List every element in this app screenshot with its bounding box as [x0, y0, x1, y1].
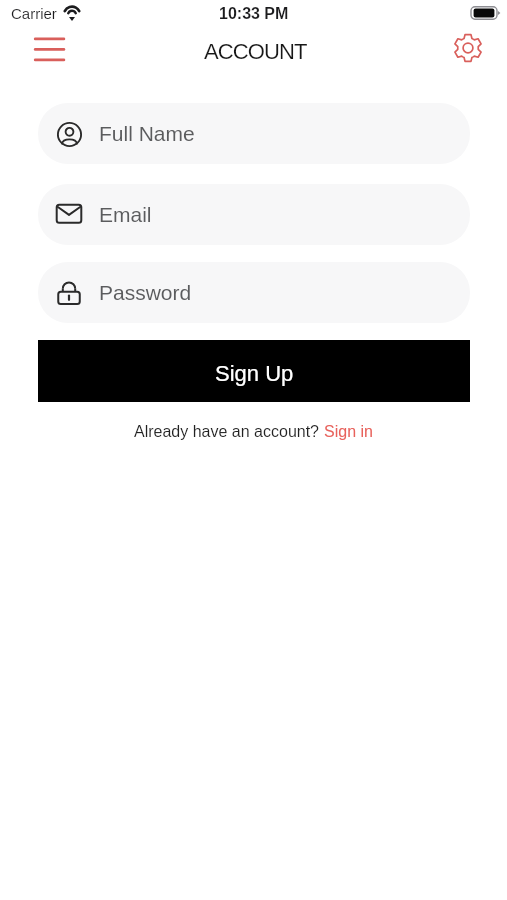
button[interactable]: Full Name — [38, 103, 470, 164]
button[interactable]: Sign in — [324, 423, 373, 441]
button[interactable]: Email — [38, 184, 470, 245]
button[interactable]: Password — [38, 262, 470, 323]
staticText: Sign Up — [215, 361, 294, 386]
staticText: Carrier — [11, 5, 57, 22]
staticText: Sign in — [324, 423, 373, 441]
staticText: ACCOUNT — [204, 39, 307, 64]
button[interactable]: Sign Up — [38, 340, 470, 402]
staticText: Already have an account? — [134, 423, 324, 441]
staticText: Email — [99, 203, 152, 226]
staticText: Password — [99, 281, 192, 304]
button[interactable]: Menu — [22, 26, 68, 71]
button[interactable]: Settings — [445, 26, 490, 70]
staticText: Full Name — [99, 122, 195, 145]
staticText: 10:33 PM — [219, 5, 289, 23]
